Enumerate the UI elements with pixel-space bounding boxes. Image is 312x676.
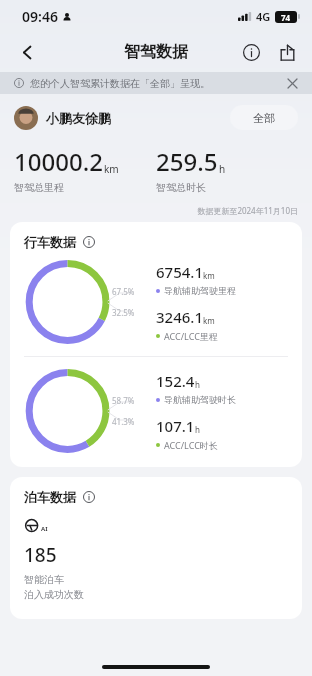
staticText: 107.1: [156, 416, 195, 436]
staticText: km: [203, 315, 215, 326]
button[interactable]: Info: [236, 37, 266, 67]
staticText: 32.5%: [112, 307, 135, 318]
button[interactable]: 泊车数据 info: [81, 489, 97, 505]
staticText: 智驾总时长: [156, 181, 206, 194]
staticText: 智驾总里程: [14, 181, 64, 194]
button[interactable]: 全部: [230, 105, 298, 130]
staticText: ACC/LCC里程: [164, 330, 218, 342]
staticText: 152.4: [156, 371, 195, 391]
staticText: 259.5: [156, 145, 218, 178]
staticText: 10000.2: [14, 145, 103, 178]
staticText: 41.3%: [112, 416, 135, 427]
staticText: 6754.1: [156, 262, 203, 282]
staticText: 09:46: [22, 7, 58, 26]
staticText: 行车数据: [24, 234, 76, 250]
button[interactable]: Share: [272, 37, 302, 67]
staticText: h: [219, 162, 226, 176]
staticText: AI: [41, 525, 48, 533]
staticText: 泊入成功次数: [24, 588, 84, 601]
staticText: 泊车数据: [24, 489, 76, 505]
staticText: 导航辅助驾驶里程: [164, 285, 236, 296]
staticText: 58.7%: [112, 395, 135, 406]
staticText: h: [195, 379, 200, 390]
staticText: 导航辅助驾驶时长: [164, 394, 236, 405]
staticText: 67.5%: [112, 286, 135, 297]
staticText: km: [104, 162, 119, 176]
button[interactable]: 行车数据 info: [81, 234, 97, 250]
button[interactable]: 泊车数据: [10, 477, 302, 619]
button[interactable]: Profile avatar: [14, 106, 38, 130]
staticText: 185: [24, 542, 57, 568]
button[interactable]: Close notice: [284, 75, 300, 91]
staticText: 3246.1: [156, 307, 203, 327]
button[interactable]: 行车数据: [10, 222, 302, 467]
staticText: h: [195, 424, 200, 435]
staticText: 您的个人智驾累计数据在「全部」呈现。: [30, 77, 210, 90]
staticText: 全部: [253, 111, 275, 125]
staticText: 数据更新至2024年11月10日: [0, 205, 298, 216]
staticText: 74: [281, 12, 291, 23]
staticText: 智能泊车: [24, 573, 64, 586]
staticText: 智驾数据: [124, 42, 188, 62]
staticText: 小鹏友徐鹏: [46, 110, 111, 126]
staticText: 4G: [256, 9, 271, 24]
staticText: ACC/LCC时长: [164, 439, 218, 451]
staticText: km: [203, 270, 215, 281]
button[interactable]: Back: [10, 35, 44, 69]
